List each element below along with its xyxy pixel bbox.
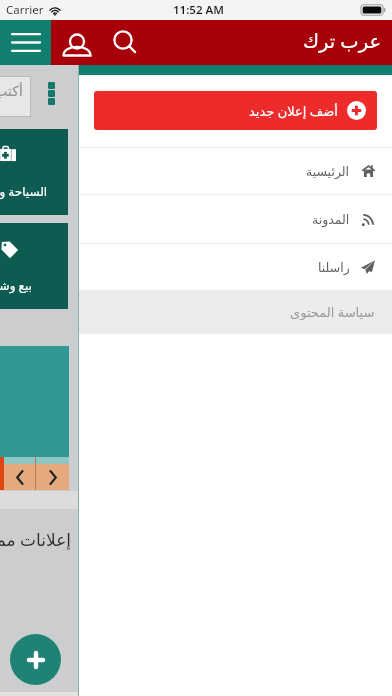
button[interactable]: Add new — [10, 634, 61, 685]
button[interactable]: بيع وشراء — [0, 223, 68, 309]
staticText: سياسة المحتوى — [290, 303, 375, 321]
staticText: عرب ترك — [303, 27, 382, 54]
button[interactable]: Open navigation menu — [0, 20, 51, 65]
staticText: بيع وشراء — [0, 277, 32, 293]
staticText: أكتب كلمة البحث — [0, 81, 23, 100]
staticText: Carrier — [6, 2, 44, 18]
button[interactable]: أكتب كلمة البحث — [0, 76, 31, 117]
staticText: المدونة — [312, 212, 350, 227]
button[interactable]: Account — [63, 27, 91, 59]
button[interactable]: أضف إعلان جديد — [94, 91, 377, 130]
button[interactable]: الرئيسية — [79, 148, 392, 194]
button[interactable]: سياسة المحتوى — [79, 290, 392, 333]
button[interactable]: More options — [42, 76, 60, 110]
staticText: راسلنا — [318, 260, 350, 275]
staticText: 11:52 AM — [173, 2, 224, 18]
button[interactable]: المدونة — [79, 195, 392, 243]
button[interactable]: Next — [36, 457, 69, 490]
staticText: الرئيسية — [306, 164, 350, 179]
staticText: أضف إعلان جديد — [249, 102, 338, 120]
button[interactable]: Previous — [4, 457, 35, 490]
button[interactable]: Search — [111, 28, 141, 58]
staticText: إعلانات مميزة — [0, 528, 71, 551]
button[interactable]: راسلنا — [79, 244, 392, 290]
button[interactable]: السياحة والسفر — [0, 129, 68, 215]
staticText: السياحة والسفر — [0, 183, 48, 199]
